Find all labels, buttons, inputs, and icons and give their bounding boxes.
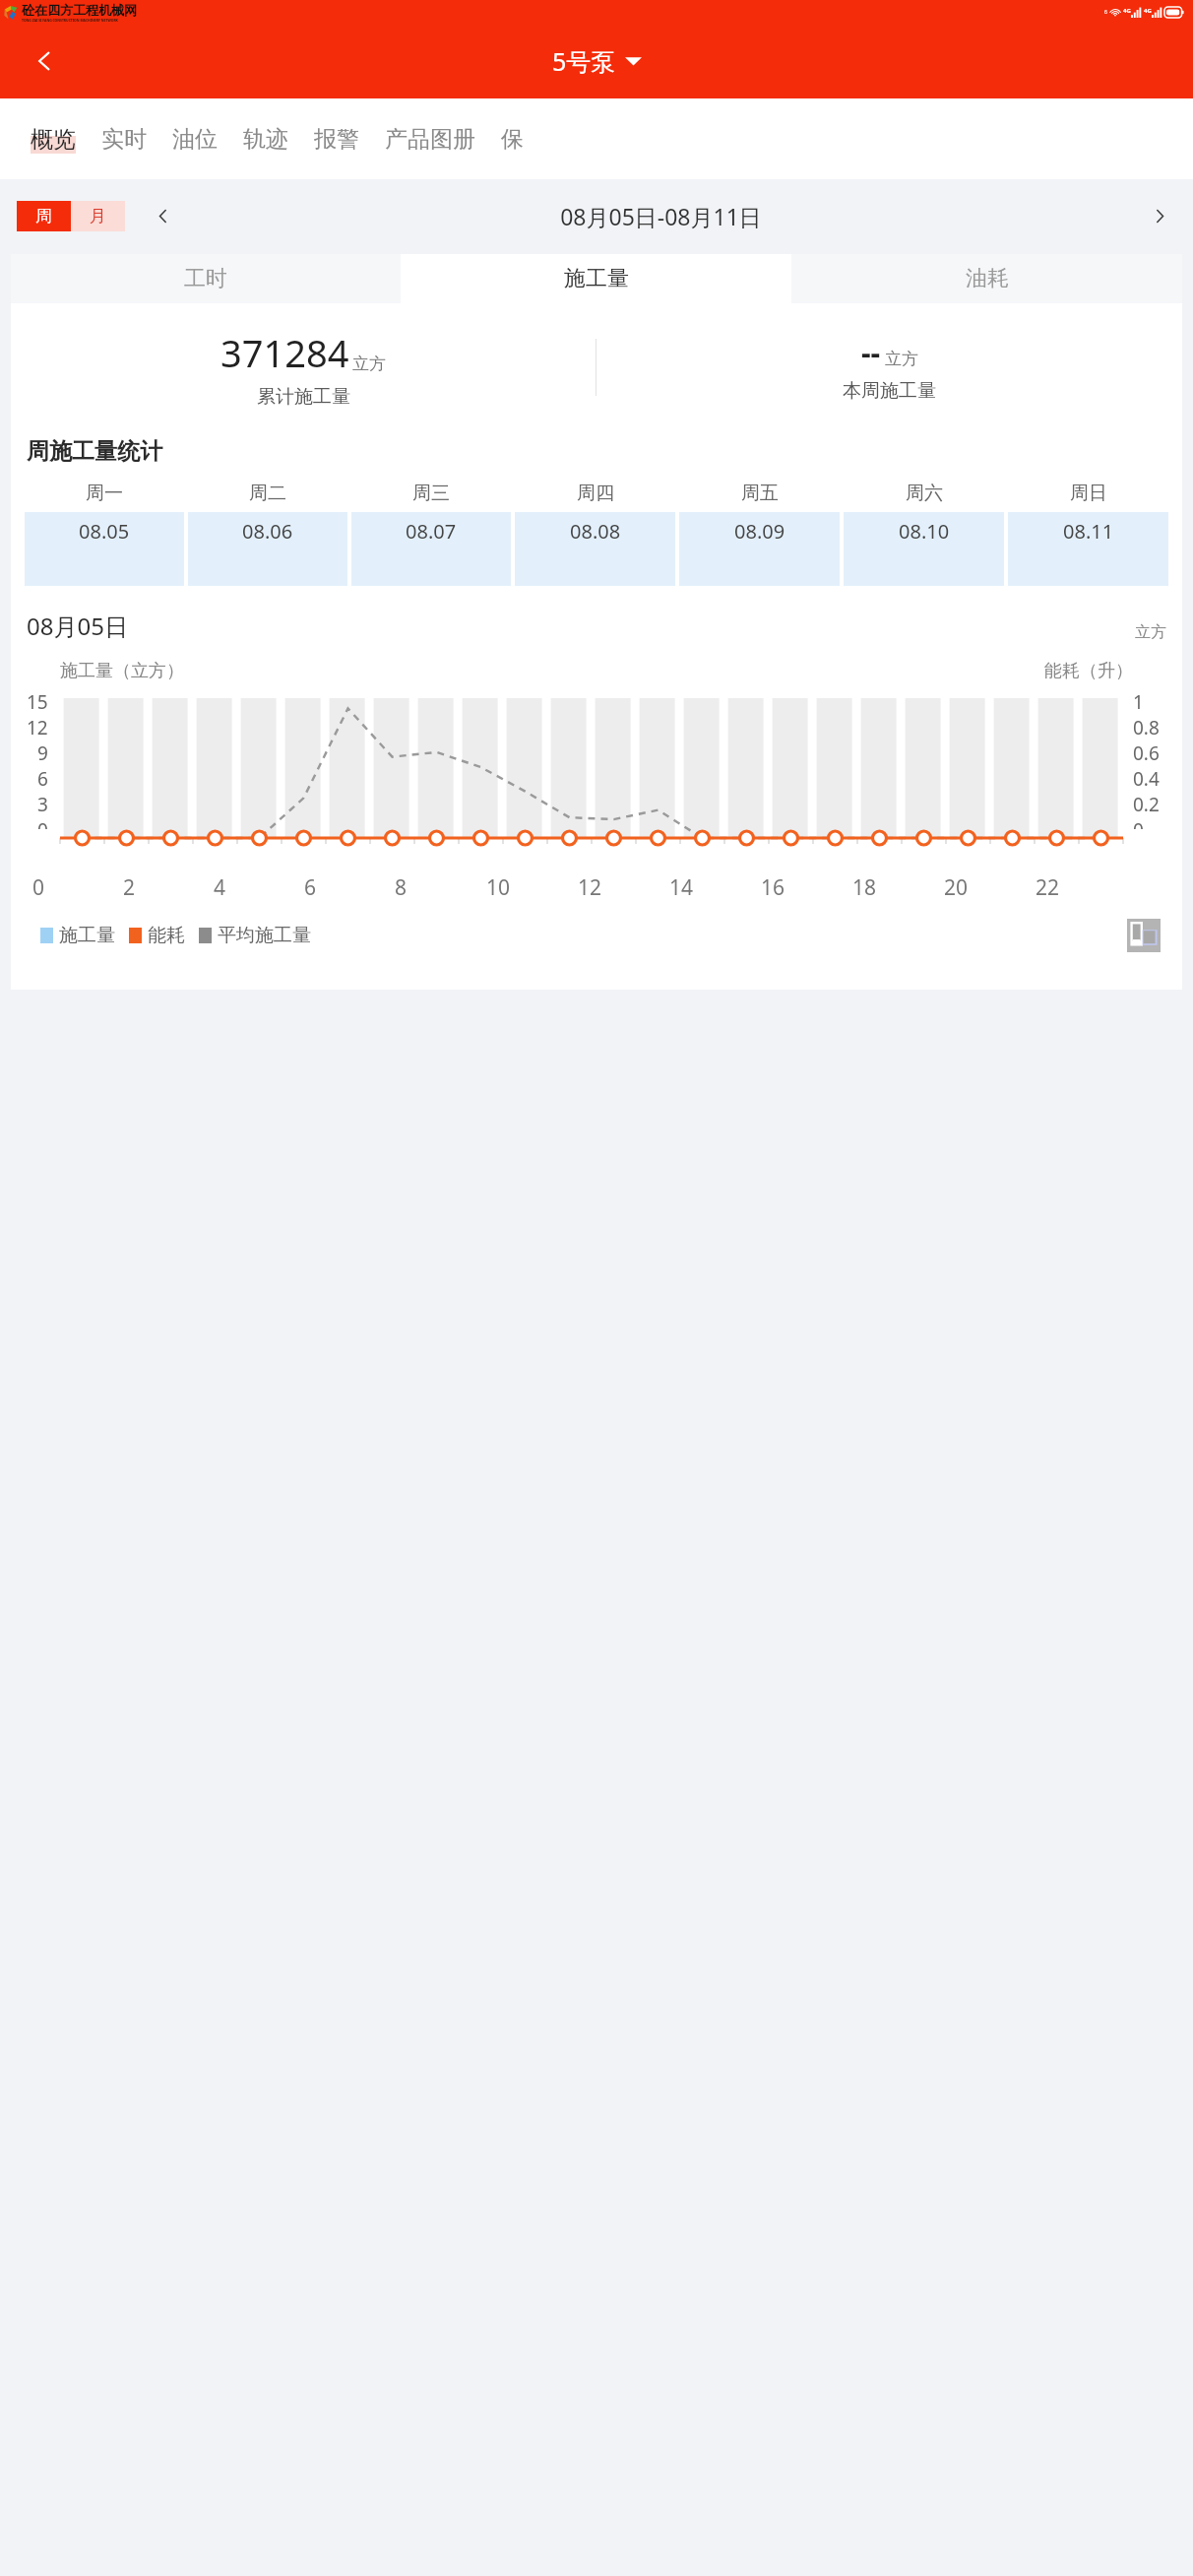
staticText: 6 bbox=[1104, 9, 1107, 16]
button[interactable]: 工时 bbox=[11, 254, 401, 303]
staticText: 5号泵 bbox=[552, 44, 616, 78]
staticText: 6 bbox=[37, 766, 48, 792]
staticText: 0.4 bbox=[1133, 766, 1160, 792]
button[interactable]: 周日 bbox=[1008, 482, 1168, 586]
staticText: 施工量（立方） bbox=[60, 660, 184, 682]
staticText: 08.08 bbox=[570, 518, 621, 545]
staticText: TONG ZAI SI FANG CONSTRUCTION MACHINERY … bbox=[22, 18, 118, 23]
button[interactable]: Previous week bbox=[146, 199, 179, 232]
staticText: 周四 bbox=[577, 482, 614, 505]
staticText: 08.07 bbox=[406, 518, 457, 545]
staticText: 概览 bbox=[31, 125, 76, 154]
staticText: 本周施工量 bbox=[843, 379, 936, 403]
staticText: 0 bbox=[32, 873, 45, 902]
staticText: 08.09 bbox=[734, 518, 785, 545]
staticText: 周二 bbox=[249, 482, 286, 505]
staticText: 08月05日 bbox=[27, 610, 128, 642]
staticText: 累计施工量 bbox=[257, 385, 350, 409]
staticText: 0.8 bbox=[1133, 715, 1160, 741]
staticText: 0 bbox=[37, 817, 48, 829]
staticText: 4 bbox=[214, 873, 226, 902]
staticText: 周六 bbox=[906, 482, 943, 505]
button[interactable]: Next week bbox=[1143, 199, 1176, 232]
staticText: 油耗 bbox=[966, 265, 1009, 292]
staticText: 轨迹 bbox=[243, 125, 288, 154]
staticText: 周施工量统计 bbox=[27, 437, 162, 466]
button[interactable]: Back bbox=[22, 38, 67, 84]
staticText: 08.06 bbox=[242, 518, 293, 545]
staticText: 10 bbox=[486, 873, 511, 902]
staticText: 08月05日-08月11日 bbox=[179, 201, 1143, 231]
staticText: 12 bbox=[578, 873, 602, 902]
staticText: 周五 bbox=[741, 482, 779, 505]
staticText: 月 bbox=[90, 206, 106, 226]
staticText: 报警 bbox=[314, 125, 359, 154]
staticText: 能耗（升） bbox=[1044, 660, 1133, 682]
staticText: 18 bbox=[852, 873, 877, 902]
staticText: 14 bbox=[669, 873, 694, 902]
staticText: 保 bbox=[501, 125, 524, 154]
staticText: 立方 bbox=[885, 349, 918, 369]
staticText: 油位 bbox=[172, 125, 218, 154]
button[interactable]: 周四 bbox=[515, 482, 675, 586]
staticText: 9 bbox=[37, 741, 48, 766]
staticText: 8 bbox=[395, 873, 408, 902]
staticText: 2 bbox=[123, 873, 136, 902]
button[interactable]: 产品图册 bbox=[385, 125, 475, 154]
staticText: 3 bbox=[37, 792, 48, 817]
button[interactable]: 实时 bbox=[101, 125, 147, 154]
staticText: 08.05 bbox=[79, 518, 130, 545]
staticText: 能耗 bbox=[148, 924, 185, 947]
staticText: 周日 bbox=[1070, 482, 1107, 505]
staticText: 08.10 bbox=[899, 518, 950, 545]
staticText: 0 bbox=[1133, 817, 1144, 829]
staticText: 周 bbox=[35, 206, 52, 226]
button[interactable]: 报警 bbox=[314, 125, 359, 154]
staticText: 12 bbox=[27, 715, 48, 741]
button[interactable]: 周二 bbox=[188, 482, 347, 586]
button[interactable]: 周三 bbox=[351, 482, 511, 586]
staticText: 周一 bbox=[86, 482, 123, 505]
staticText: 15 bbox=[27, 689, 48, 715]
staticText: 周三 bbox=[412, 482, 450, 505]
staticText: 立方 bbox=[1135, 622, 1166, 642]
staticText: 0.6 bbox=[1133, 741, 1160, 766]
button[interactable]: 周 bbox=[17, 201, 71, 231]
staticText: 22 bbox=[1036, 873, 1060, 902]
button[interactable]: 概览 bbox=[31, 125, 76, 154]
staticText: 平均施工量 bbox=[218, 924, 311, 947]
staticText: 施工量 bbox=[59, 924, 115, 947]
button[interactable]: Rotate chart to landscape bbox=[1125, 917, 1162, 954]
staticText: 16 bbox=[761, 873, 785, 902]
staticText: 4G bbox=[1144, 7, 1152, 15]
staticText: 实时 bbox=[101, 125, 147, 154]
button[interactable]: 周五 bbox=[679, 482, 840, 586]
staticText: -- bbox=[861, 332, 881, 372]
staticText: 6 bbox=[304, 873, 317, 902]
staticText: 施工量 bbox=[564, 265, 629, 292]
staticText: 20 bbox=[944, 873, 969, 902]
staticText: 产品图册 bbox=[385, 125, 475, 154]
staticText: 1 bbox=[1133, 689, 1144, 715]
button[interactable]: 保 bbox=[501, 125, 524, 154]
staticText: 立方 bbox=[352, 354, 386, 374]
staticText: 工时 bbox=[184, 265, 227, 292]
staticText: 0.2 bbox=[1133, 792, 1160, 817]
button[interactable]: 月 bbox=[71, 201, 125, 231]
button[interactable]: 周六 bbox=[844, 482, 1004, 586]
button[interactable]: 5号泵 bbox=[552, 44, 642, 78]
button[interactable]: 施工量 bbox=[401, 254, 791, 303]
button[interactable]: 油位 bbox=[172, 125, 218, 154]
staticText: 4G bbox=[1123, 7, 1131, 15]
staticText: 371284 bbox=[220, 327, 349, 378]
button[interactable]: 轨迹 bbox=[243, 125, 288, 154]
staticText: 08.11 bbox=[1063, 518, 1114, 545]
staticText: 砼在四方工程机械网 bbox=[22, 2, 137, 18]
button[interactable]: 油耗 bbox=[791, 254, 1182, 303]
button[interactable]: 周一 bbox=[25, 482, 184, 586]
